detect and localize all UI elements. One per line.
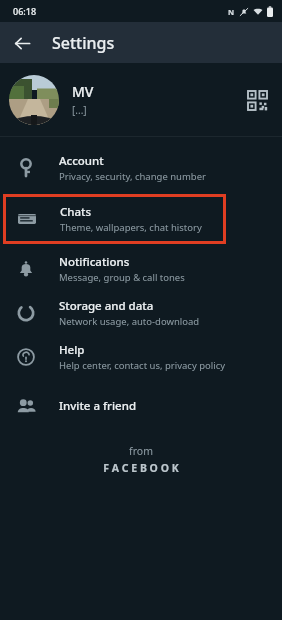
staticText: Network usage, auto-download (59, 315, 200, 328)
staticText: Privacy, security, change number (59, 170, 206, 183)
staticText: N (228, 7, 235, 17)
staticText: MV (72, 82, 94, 101)
staticText: Settings (52, 32, 115, 54)
button[interactable]: Account (0, 146, 282, 190)
staticText: [...] (72, 103, 87, 117)
staticText: from (129, 444, 153, 458)
button[interactable]: Notifications (0, 247, 282, 291)
button[interactable]: Invite a friend (0, 385, 282, 427)
button[interactable]: Back (8, 29, 36, 57)
staticText: Help center, contact us, privacy policy (59, 359, 226, 372)
button[interactable]: Help (0, 335, 282, 379)
button[interactable]: QR code (242, 85, 272, 115)
button[interactable]: MV (0, 63, 282, 136)
staticText: Help (59, 342, 85, 358)
staticText: 06:18 (13, 5, 37, 17)
staticText: Invite a friend (59, 398, 137, 414)
staticText: F A C E B O O K (103, 461, 179, 475)
staticText: Storage and data (59, 298, 154, 314)
staticText: Theme, wallpapers, chat history (60, 221, 202, 234)
button[interactable]: Storage and data (0, 291, 282, 335)
staticText: Account (59, 153, 104, 169)
staticText: Message, group & call tones (59, 271, 185, 284)
staticText: Notifications (59, 254, 130, 270)
staticText: Chats (60, 204, 92, 220)
